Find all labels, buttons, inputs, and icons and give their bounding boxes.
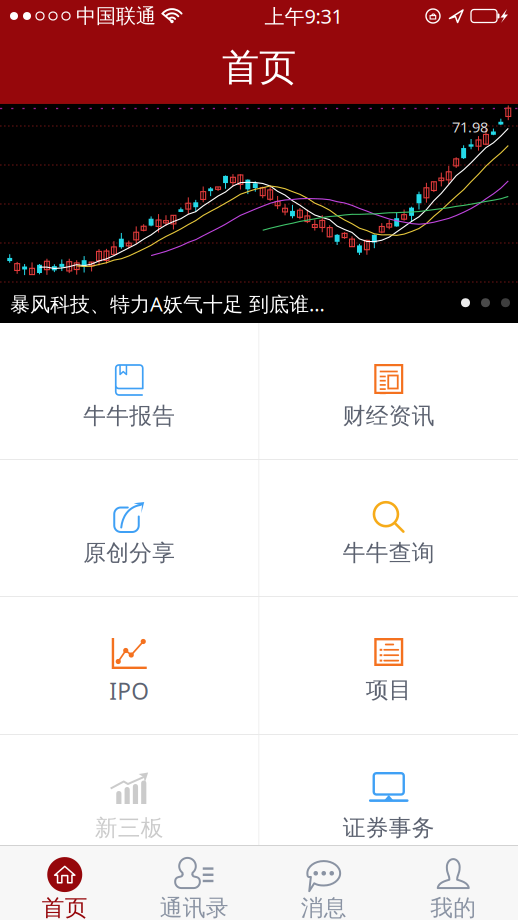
button[interactable]: 通讯录 (129, 845, 259, 920)
staticText: 证券事务 (343, 814, 435, 842)
button[interactable]: 消息 (259, 845, 388, 920)
staticText: 中国联通 (76, 4, 156, 28)
staticText: 财经资讯 (343, 402, 435, 430)
button[interactable]: 牛牛报告 (0, 323, 258, 459)
button[interactable]: 我的 (388, 845, 518, 920)
button[interactable]: 证券事务 (259, 735, 518, 871)
staticText: 项目 (366, 676, 412, 704)
button[interactable]: 牛牛查询 (259, 460, 518, 596)
staticText: 首页 (222, 45, 296, 90)
staticText: IPO (109, 676, 149, 706)
staticText: 暴风科技、特力A妖气十足 到底谁… (10, 290, 325, 317)
staticText: 牛牛报告 (83, 402, 175, 430)
staticText: 新三板 (95, 814, 164, 842)
button[interactable]: 财经资讯 (259, 323, 518, 459)
button[interactable]: 新三板 (0, 735, 258, 871)
button[interactable]: 原创分享 (0, 460, 258, 596)
button[interactable]: 项目 (259, 597, 518, 734)
staticText: 上午9:31 (264, 3, 342, 29)
staticText: 牛牛查询 (343, 539, 435, 567)
button[interactable]: IPO (0, 597, 258, 734)
staticText: 我的 (430, 894, 476, 920)
staticText: 通讯录 (160, 894, 229, 920)
staticText: 首页 (42, 894, 88, 920)
button[interactable]: 首页 (0, 845, 129, 920)
staticText: 消息 (301, 894, 347, 920)
staticText: 原创分享 (83, 539, 175, 567)
staticText: 71.98 (452, 117, 488, 136)
